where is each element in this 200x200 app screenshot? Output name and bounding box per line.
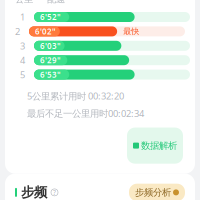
staticText: 4 [20, 54, 25, 66]
staticText: 最后不足一公里用时00:02:34 [27, 107, 144, 120]
staticText: 5 [20, 68, 25, 81]
staticText: 数据解析 [141, 140, 177, 151]
staticText: 6'02" [35, 26, 56, 37]
staticText: 2 [15, 25, 20, 38]
staticText: 6'29" [40, 55, 61, 65]
staticText: 最快 [123, 26, 139, 36]
staticText: 公里 [15, 0, 33, 5]
staticText: 6'03" [40, 40, 61, 51]
staticText: 5公里累计用时 00:32:20 [27, 90, 124, 102]
staticText: 1 [20, 11, 25, 23]
staticText: 3 [20, 40, 25, 52]
staticText: 6'53" [40, 69, 61, 80]
staticText: 步频 [21, 184, 47, 200]
button[interactable] [127, 128, 183, 164]
staticText: 配速 [47, 0, 65, 5]
button[interactable]: 关于步频 [51, 189, 58, 196]
staticText: ? [53, 188, 56, 197]
button[interactable]: 步频分析 [129, 184, 185, 200]
staticText: 步频分析 [135, 187, 171, 198]
staticText: 6'52" [40, 12, 61, 22]
